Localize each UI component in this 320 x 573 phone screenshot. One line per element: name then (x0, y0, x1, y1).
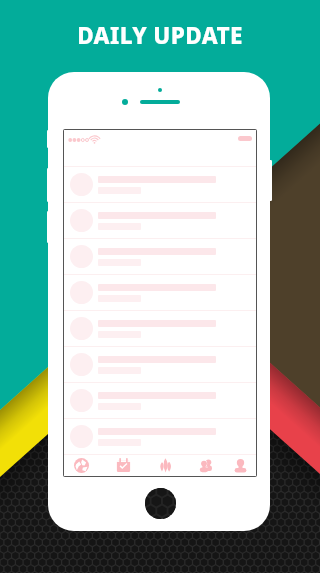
button[interactable] (64, 311, 256, 346)
button[interactable]: Profile (221, 455, 257, 476)
button[interactable] (64, 383, 256, 418)
button[interactable] (64, 167, 256, 202)
button[interactable]: Friends (186, 455, 224, 476)
button[interactable] (64, 347, 256, 382)
staticText: DAILY UPDATE (77, 20, 243, 51)
button[interactable] (64, 419, 256, 454)
button[interactable] (64, 275, 256, 310)
button[interactable]: Explore (63, 455, 100, 476)
button[interactable] (64, 203, 256, 238)
button[interactable] (64, 239, 256, 274)
button[interactable]: Trending (146, 455, 184, 476)
button[interactable]: Calendar (104, 455, 142, 476)
